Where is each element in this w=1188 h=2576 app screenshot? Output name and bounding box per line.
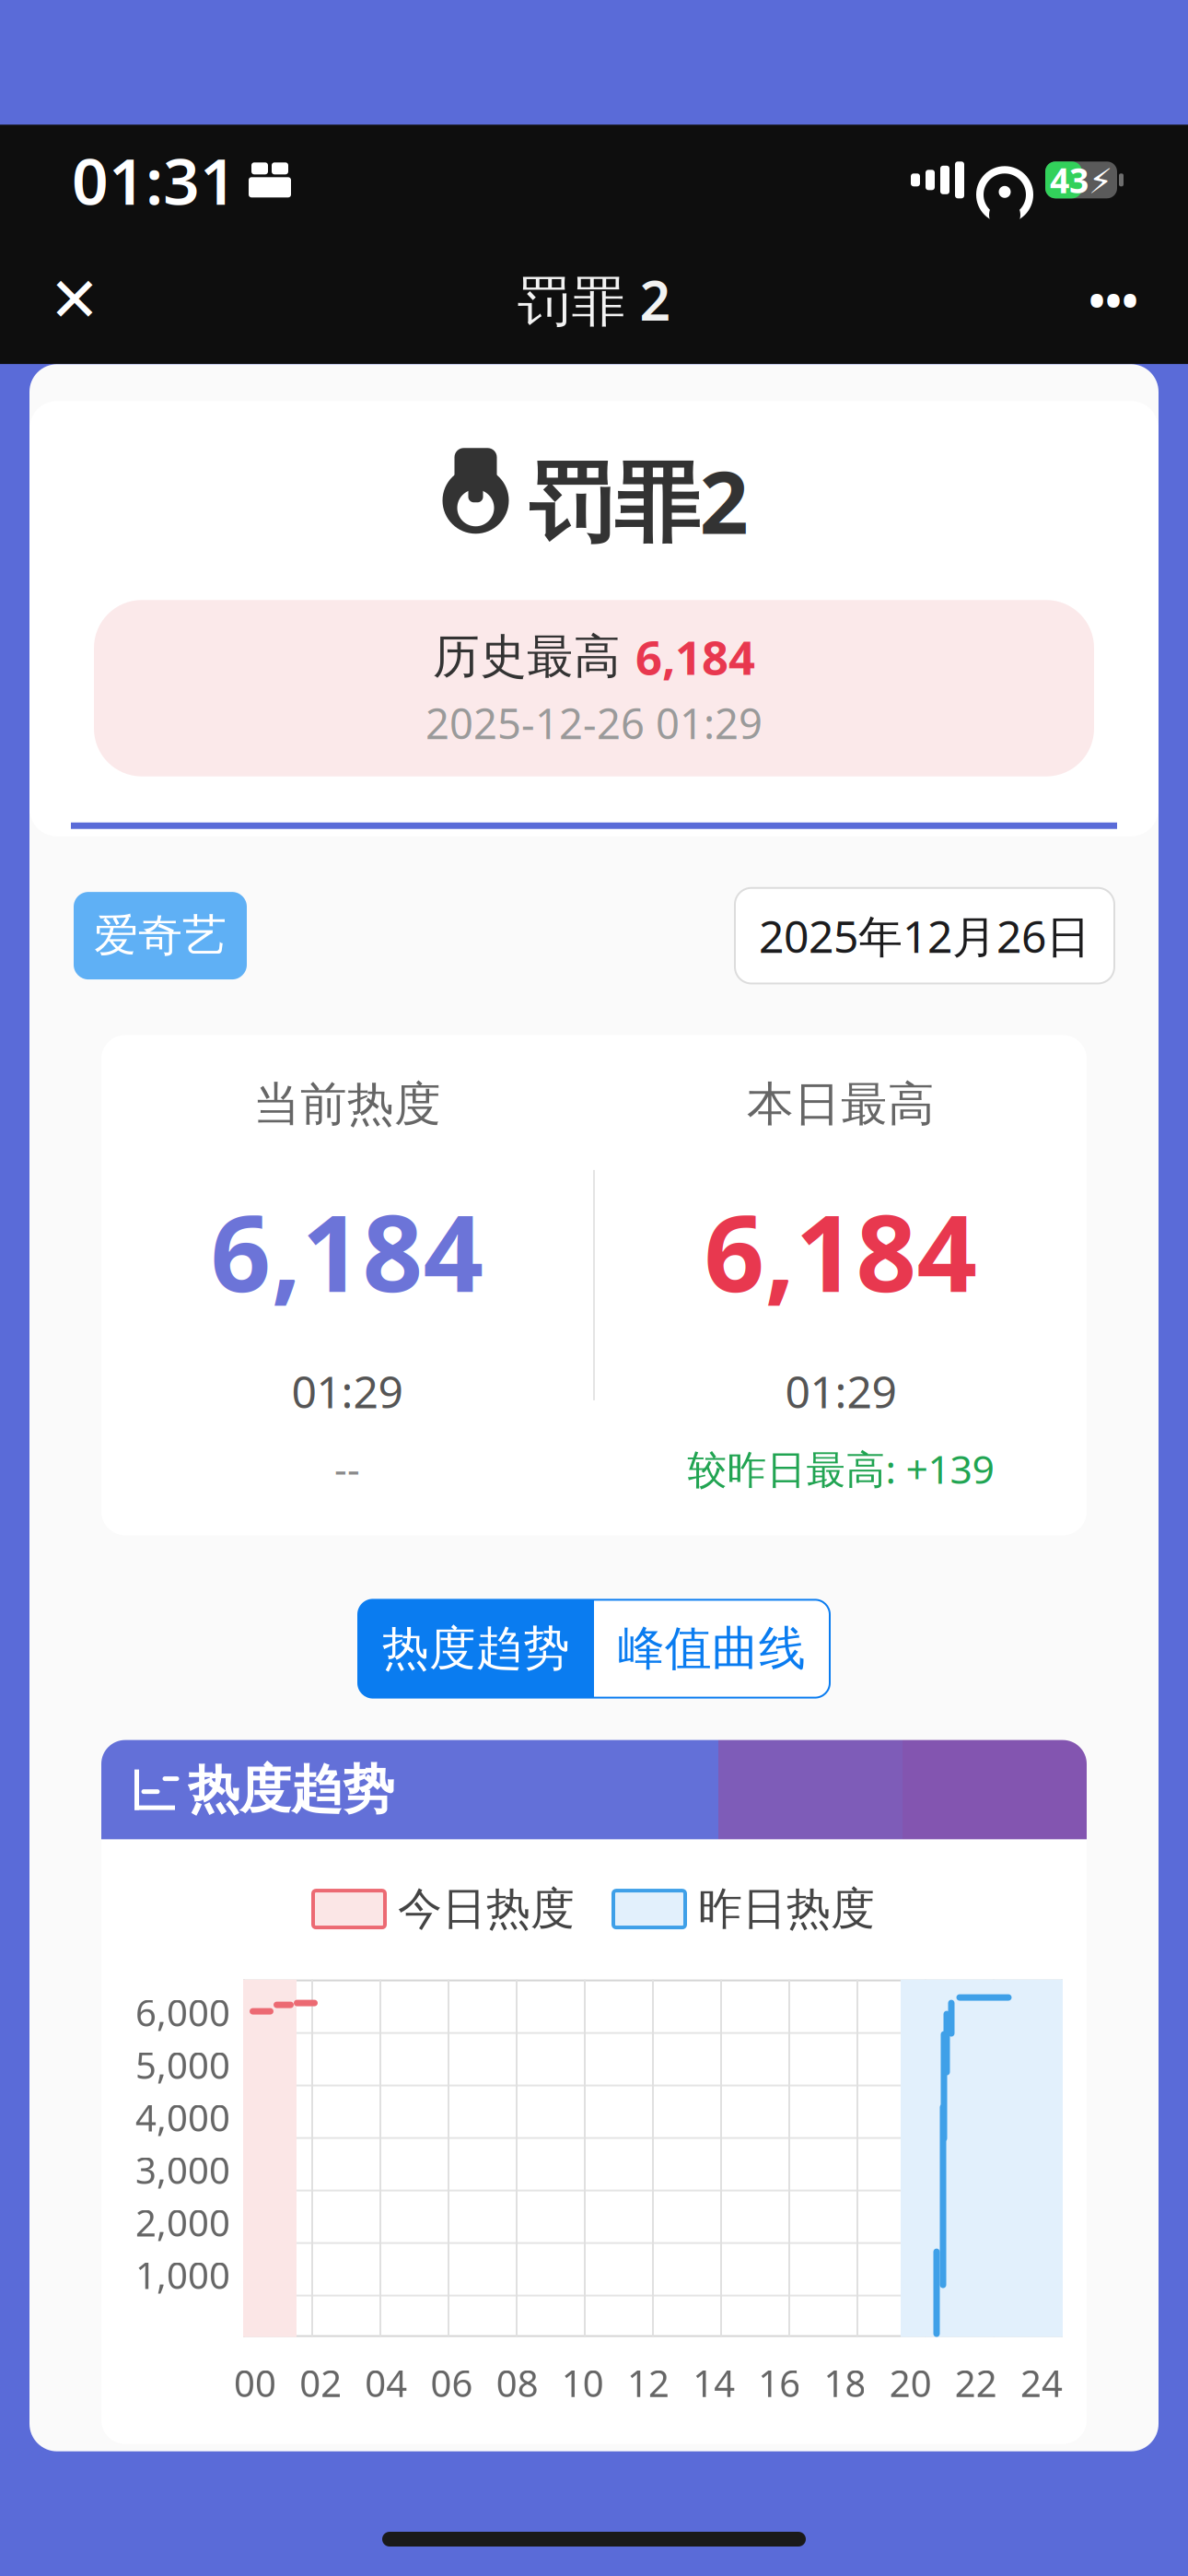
button[interactable]: 爱奇艺 bbox=[74, 892, 247, 979]
staticText: 2025-12-26 01:29 bbox=[425, 695, 763, 751]
button[interactable]: 2025年12月26日 bbox=[735, 888, 1114, 983]
staticText: 热度趋势 bbox=[382, 1620, 570, 1677]
staticText: 2025年12月26日 bbox=[759, 906, 1090, 965]
staticText: 1,000 bbox=[135, 2250, 230, 2299]
staticText: 01:31 bbox=[72, 138, 237, 222]
staticText: 12 bbox=[627, 2358, 670, 2407]
staticText: 4,000 bbox=[135, 2093, 230, 2142]
button[interactable]: 更多 bbox=[1063, 249, 1164, 350]
staticText: 6,000 bbox=[135, 1988, 230, 2037]
staticText: 昨日热度 bbox=[698, 1882, 875, 1936]
staticText: 5,000 bbox=[135, 2040, 230, 2089]
staticText: 20 bbox=[889, 2358, 932, 2407]
button[interactable]: 峰值曲线 bbox=[594, 1600, 830, 1698]
staticText: 02 bbox=[299, 2358, 342, 2407]
staticText: 01:29 bbox=[291, 1362, 403, 1420]
button[interactable]: 热度趋势 bbox=[358, 1600, 594, 1698]
staticText: 较昨日最高: +139 bbox=[687, 1443, 994, 1495]
staticText: 历史最高 bbox=[433, 628, 621, 685]
staticText: 16 bbox=[758, 2358, 801, 2407]
button[interactable]: 关闭 bbox=[24, 249, 125, 350]
staticText: 6,184 bbox=[635, 626, 755, 688]
staticText: 3,000 bbox=[135, 2145, 230, 2194]
staticText: 今日热度 bbox=[398, 1882, 575, 1936]
staticText: 18 bbox=[824, 2358, 866, 2407]
staticText: ••• bbox=[1089, 270, 1138, 329]
staticText: ✕ bbox=[49, 265, 100, 335]
staticText: 10 bbox=[562, 2358, 604, 2407]
staticText: 43⚡︎ bbox=[1050, 157, 1112, 203]
staticText: 热度趋势 bbox=[188, 1758, 394, 1821]
staticText: 6,184 bbox=[704, 1181, 978, 1321]
staticText: 22 bbox=[955, 2358, 997, 2407]
staticText: 当前热度 bbox=[253, 1076, 441, 1133]
staticText: 08 bbox=[496, 2358, 538, 2407]
staticText: 本日最高 bbox=[747, 1076, 935, 1133]
staticText: 06 bbox=[431, 2358, 473, 2407]
staticText: -- bbox=[334, 1443, 360, 1495]
staticText: 24 bbox=[1020, 2358, 1063, 2407]
staticText: 峰值曲线 bbox=[618, 1620, 806, 1677]
staticText: 6,184 bbox=[210, 1181, 484, 1321]
staticText: 罚罪2 bbox=[528, 443, 748, 558]
staticText: 14 bbox=[693, 2358, 735, 2407]
staticText: 00 bbox=[234, 2358, 276, 2407]
staticText: 罚罪 2 bbox=[517, 264, 671, 336]
staticText: 2,000 bbox=[135, 2198, 230, 2247]
staticText: 爱奇艺 bbox=[94, 909, 227, 963]
staticText: 01:29 bbox=[785, 1362, 897, 1420]
staticText: 04 bbox=[365, 2358, 407, 2407]
